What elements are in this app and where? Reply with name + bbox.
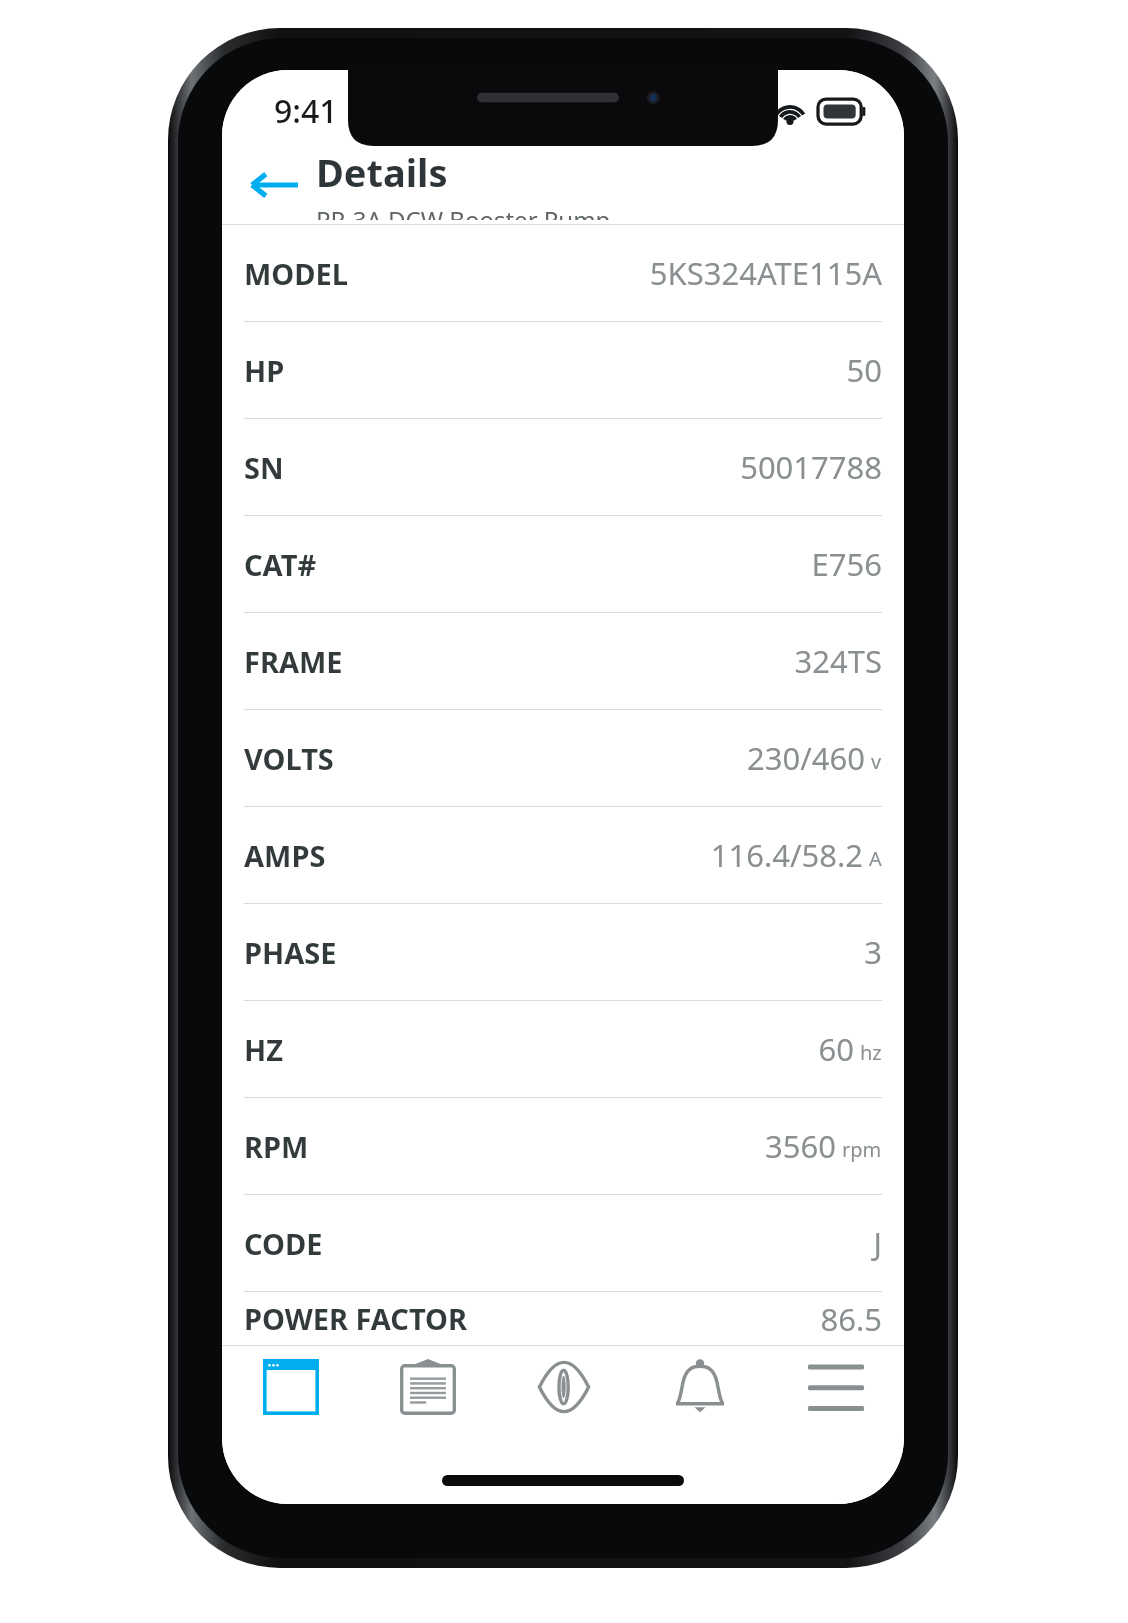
staticText: 60 bbox=[818, 1028, 854, 1070]
button[interactable]: PHASE bbox=[222, 904, 904, 1000]
staticText: MODEL bbox=[244, 254, 348, 293]
staticText: 86.5 bbox=[820, 1298, 882, 1340]
button[interactable]: VOLTS bbox=[222, 710, 904, 806]
button[interactable]: AMPS bbox=[222, 807, 904, 903]
button[interactable]: HP bbox=[222, 322, 904, 418]
staticText: rpm bbox=[842, 1136, 882, 1163]
staticText: 5KS324ATE115A bbox=[649, 252, 882, 294]
staticText: 9:41 bbox=[274, 89, 338, 133]
staticText: Details bbox=[316, 146, 448, 198]
button[interactable]: Menu bbox=[768, 1346, 904, 1428]
staticText: AMPS bbox=[244, 836, 326, 875]
staticText: 324TS bbox=[794, 640, 882, 682]
staticText: VOLTS bbox=[244, 739, 334, 778]
button[interactable]: HZ bbox=[222, 1001, 904, 1097]
button[interactable]: Back bbox=[236, 150, 312, 220]
button[interactable]: Dashboard bbox=[222, 1346, 359, 1428]
button[interactable]: CODE bbox=[222, 1195, 904, 1291]
staticText: 3 bbox=[864, 931, 882, 973]
staticText: J bbox=[873, 1222, 882, 1264]
staticText: 116.4/58.2 bbox=[710, 834, 863, 876]
staticText: FRAME bbox=[244, 642, 343, 681]
button[interactable]: FRAME bbox=[222, 613, 904, 709]
button[interactable]: POWER FACTOR bbox=[222, 1292, 904, 1345]
button[interactable]: Alerts bbox=[632, 1346, 768, 1428]
staticText: SN bbox=[244, 448, 284, 487]
button[interactable]: CAT# bbox=[222, 516, 904, 612]
staticText: 230/460 bbox=[747, 737, 865, 779]
button[interactable]: RPM bbox=[222, 1098, 904, 1194]
staticText: 50 bbox=[846, 349, 882, 391]
staticText: hz bbox=[860, 1039, 882, 1066]
staticText: RPM bbox=[244, 1127, 309, 1166]
staticText: CODE bbox=[244, 1224, 323, 1263]
staticText: PP-3A DCW Booster Pump bbox=[316, 203, 611, 220]
button[interactable]: Reports bbox=[359, 1346, 496, 1428]
button[interactable]: Watch bbox=[496, 1346, 632, 1428]
staticText: HZ bbox=[244, 1030, 283, 1069]
button[interactable]: SN bbox=[222, 419, 904, 515]
staticText: 50017788 bbox=[740, 446, 882, 488]
staticText: A bbox=[869, 845, 882, 872]
staticText: PHASE bbox=[244, 933, 337, 972]
staticText: E756 bbox=[811, 543, 882, 585]
staticText: CAT# bbox=[244, 545, 317, 584]
staticText: 3560 bbox=[765, 1125, 836, 1167]
staticText: HP bbox=[244, 351, 285, 390]
staticText: v bbox=[871, 748, 882, 775]
button[interactable]: MODEL bbox=[222, 225, 904, 321]
staticText: POWER FACTOR bbox=[244, 1299, 468, 1338]
